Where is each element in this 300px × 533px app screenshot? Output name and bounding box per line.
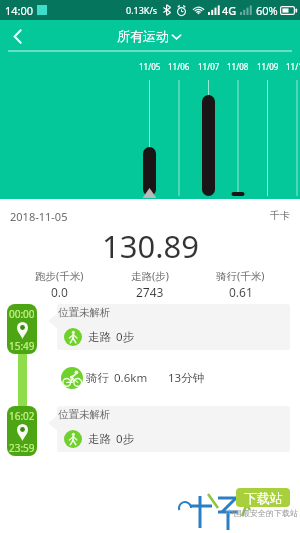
staticText: 0步 — [116, 431, 135, 447]
staticText: 11/08 — [227, 61, 249, 72]
button[interactable]: 走路 — [64, 430, 135, 448]
staticText: 走路 — [88, 432, 111, 446]
staticText: 00:00 — [9, 307, 35, 321]
staticText: 14:00 — [5, 3, 34, 18]
staticText: 11/06 — [168, 61, 190, 72]
button[interactable]: 骑行 — [61, 367, 205, 389]
staticText: 位置未解析 — [58, 306, 111, 319]
staticText: 中国最安全的下载站 — [226, 508, 298, 518]
staticText: 0.6km — [114, 370, 148, 386]
staticText: 130.89 — [102, 225, 199, 267]
staticText: 位置未解析 — [58, 408, 111, 421]
staticText: 骑行(千米) — [216, 269, 265, 283]
staticText: 23:59 — [9, 441, 35, 455]
button[interactable]: 所有运动 — [111, 24, 189, 48]
button[interactable]: Back — [0, 20, 34, 52]
staticText: 走路 — [88, 330, 111, 344]
staticText: 11/09 — [257, 61, 279, 72]
staticText: 11/10 — [286, 61, 300, 72]
staticText: 0.0 — [51, 284, 68, 300]
staticText: 2743 — [136, 284, 164, 300]
staticText: 13分钟 — [168, 370, 205, 386]
staticText: 11/07 — [198, 61, 220, 72]
button[interactable]: 00:00 — [7, 304, 37, 354]
staticText: 11/05 — [139, 61, 161, 72]
staticText: 60% — [256, 3, 278, 18]
staticText: 15:49 — [9, 339, 35, 353]
staticText: 走路(步) — [131, 269, 169, 283]
staticText: 骑行 — [86, 371, 109, 385]
staticText: 2018-11-05 — [10, 209, 68, 224]
staticText: 下载站 — [244, 490, 283, 506]
button[interactable]: 16:02 — [7, 406, 37, 456]
button[interactable]: 走路 — [64, 328, 135, 346]
staticText: 千卡 — [270, 209, 290, 222]
staticText: 0步 — [116, 329, 135, 345]
staticText: 0.13K/s — [126, 4, 158, 16]
staticText: 跑步(千米) — [35, 269, 84, 283]
staticText: 所有运动 — [117, 28, 169, 44]
staticText: 4G — [222, 3, 237, 18]
staticText: 16:02 — [9, 409, 35, 423]
staticText: 0.61 — [229, 284, 253, 300]
